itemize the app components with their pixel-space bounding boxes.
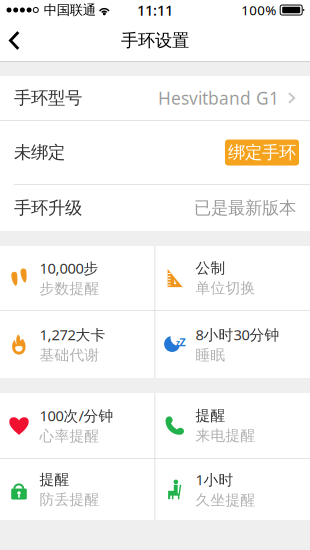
button[interactable]: 绑定手环 xyxy=(225,139,299,165)
staticText: 久坐提醒 xyxy=(195,491,255,509)
staticText: 来电提醒 xyxy=(195,426,255,444)
staticText: 100次/分钟 xyxy=(39,406,113,425)
staticText: 基础代谢 xyxy=(39,346,99,364)
staticText: 8小时30分钟 xyxy=(195,325,279,344)
staticText: 心率提醒 xyxy=(39,427,99,445)
button[interactable]: Back xyxy=(0,20,36,61)
staticText: 手环设置 xyxy=(121,30,189,51)
button[interactable]: 1,272大卡 xyxy=(0,311,154,378)
staticText: 10,000步 xyxy=(39,258,98,278)
button[interactable]: 1小时 xyxy=(155,459,310,520)
staticText: 公制 xyxy=(195,259,225,277)
staticText: 1小时 xyxy=(195,470,233,489)
staticText: 11:11 xyxy=(137,0,173,20)
staticText: 防丢提醒 xyxy=(39,490,99,508)
staticText: 100% xyxy=(241,1,276,19)
button[interactable]: Z xyxy=(155,311,310,378)
button[interactable]: 提醒 xyxy=(155,393,310,458)
staticText: Hesvitband G1 xyxy=(158,86,279,109)
staticText: 步数提醒 xyxy=(39,280,99,298)
button[interactable]: 手环升级 xyxy=(0,185,310,231)
staticText: 手环型号 xyxy=(14,87,82,109)
button[interactable]: 10,000步 xyxy=(0,246,154,310)
staticText: 已是最新版本 xyxy=(194,197,296,219)
staticText: 1,272大卡 xyxy=(39,325,105,344)
staticText: z xyxy=(176,337,180,348)
staticText: Z xyxy=(179,335,185,349)
staticText: 未绑定 xyxy=(14,142,65,163)
staticText: 手环升级 xyxy=(14,197,82,219)
staticText: 睡眠 xyxy=(195,346,225,364)
button[interactable]: 公制 xyxy=(155,246,310,310)
staticText: 中国联通 xyxy=(44,2,96,18)
staticText: 绑定手环 xyxy=(228,142,296,163)
staticText: 单位切换 xyxy=(195,279,255,297)
staticText: 提醒 xyxy=(39,470,69,488)
button[interactable]: 提醒 xyxy=(0,459,154,520)
button[interactable]: 手环型号 xyxy=(0,76,310,120)
button[interactable]: 100次/分钟 xyxy=(0,393,154,458)
staticText: 提醒 xyxy=(195,406,225,424)
